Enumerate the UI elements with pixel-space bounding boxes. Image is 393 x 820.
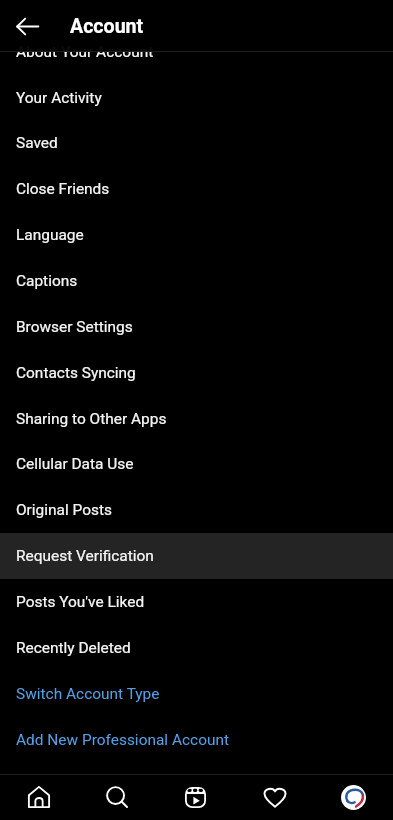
button[interactable]: Profile xyxy=(314,774,393,820)
staticText: Cellular Data Use xyxy=(16,455,134,473)
button[interactable]: Contacts Syncing xyxy=(0,350,393,396)
button[interactable]: Sharing to Other Apps xyxy=(0,396,393,442)
staticText: Account xyxy=(70,15,144,38)
staticText: Saved xyxy=(16,134,58,152)
button[interactable]: Language xyxy=(0,212,393,258)
button[interactable]: Add New Professional Account xyxy=(0,717,393,763)
staticText: Close Friends xyxy=(16,180,110,198)
button[interactable]: Switch Account Type xyxy=(0,671,393,717)
staticText: Language xyxy=(16,226,84,244)
staticText: Switch Account Type xyxy=(16,685,160,703)
button[interactable]: Home xyxy=(0,774,78,820)
button[interactable]: Original Posts xyxy=(0,487,393,533)
staticText: About Your Account xyxy=(16,43,154,61)
button[interactable]: Posts You've Liked xyxy=(0,579,393,625)
staticText: Sharing to Other Apps xyxy=(16,410,167,428)
button[interactable]: Your Activity xyxy=(0,75,393,121)
button[interactable]: Search xyxy=(78,774,156,820)
button[interactable]: Request Verification xyxy=(0,533,393,579)
button[interactable]: Captions xyxy=(0,258,393,304)
staticText: Recently Deleted xyxy=(16,639,131,657)
button[interactable]: Recently Deleted xyxy=(0,625,393,671)
button[interactable]: Browser Settings xyxy=(0,304,393,350)
staticText: Your Activity xyxy=(16,89,102,107)
staticText: Captions xyxy=(16,272,78,290)
button[interactable]: Saved xyxy=(0,120,393,166)
staticText: Contacts Syncing xyxy=(16,364,136,382)
button[interactable]: Back xyxy=(7,6,47,46)
button[interactable]: About Your Account xyxy=(0,29,393,75)
button[interactable]: Notifications xyxy=(235,774,314,820)
staticText: Posts You've Liked xyxy=(16,593,145,611)
staticText: Browser Settings xyxy=(16,318,133,336)
button[interactable]: Close Friends xyxy=(0,166,393,212)
button[interactable]: Cellular Data Use xyxy=(0,441,393,487)
staticText: Add New Professional Account xyxy=(16,731,230,749)
button[interactable]: Reels xyxy=(156,774,235,820)
staticText: Original Posts xyxy=(16,501,112,519)
staticText: Request Verification xyxy=(16,547,154,565)
